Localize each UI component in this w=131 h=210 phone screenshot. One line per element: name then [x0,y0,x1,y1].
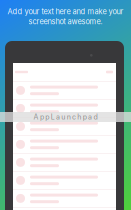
staticText: screenshot awesome. [28,17,102,26]
staticText: AppLaunchpad [34,113,97,121]
staticText: Add your text here and make your [7,7,123,16]
